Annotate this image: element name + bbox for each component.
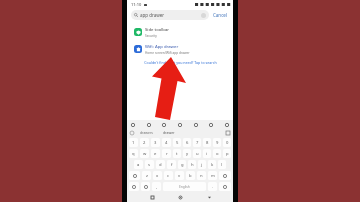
staticText: f <box>171 162 173 168</box>
staticText: c <box>167 173 170 179</box>
button[interactable]: z <box>142 171 151 180</box>
staticText: n <box>200 173 203 179</box>
staticText: i <box>206 151 208 157</box>
button[interactable]: Keyboard tool 3 <box>161 122 167 128</box>
button[interactable]: s <box>145 160 154 169</box>
button[interactable]: r <box>162 149 171 158</box>
staticText: x <box>156 173 159 179</box>
button[interactable]: , <box>152 182 161 191</box>
staticText: v <box>178 173 181 179</box>
button[interactable]: q <box>129 149 138 158</box>
button[interactable]: Emoji <box>141 182 150 191</box>
staticText: h <box>191 162 194 168</box>
button[interactable]: y <box>183 149 191 158</box>
button[interactable]: 6 <box>183 138 191 147</box>
button[interactable]: f <box>167 160 176 169</box>
staticText: u <box>196 151 199 157</box>
staticText: Security <box>145 34 157 38</box>
staticText: Side toolbar <box>145 27 170 33</box>
button[interactable]: Back <box>205 193 213 201</box>
staticText: drawer <box>163 130 175 135</box>
button[interactable]: . <box>208 182 217 191</box>
staticText: o <box>216 151 219 157</box>
staticText: 9 <box>216 140 219 146</box>
button[interactable]: Shift <box>129 171 140 180</box>
button[interactable]: u <box>193 149 201 158</box>
button[interactable]: n <box>197 171 206 180</box>
staticText: z <box>146 173 148 179</box>
button[interactable]: h <box>188 160 196 169</box>
staticText: s <box>148 162 151 168</box>
button[interactable]: Keyboard tool 1 <box>130 122 136 128</box>
button[interactable]: 7 <box>193 138 201 147</box>
button[interactable]: Recents <box>148 193 156 201</box>
staticText: drawers <box>140 130 153 135</box>
button[interactable]: k <box>208 160 216 169</box>
button[interactable]: Cancel <box>212 11 229 19</box>
button[interactable]: 3 <box>151 138 160 147</box>
button[interactable]: Keyboard tool 2 <box>146 122 152 128</box>
staticText: r <box>166 151 168 157</box>
button[interactable]: Backspace <box>219 171 231 180</box>
button[interactable]: d <box>156 160 165 169</box>
button[interactable]: b <box>186 171 195 180</box>
other: Search <box>134 13 138 17</box>
button[interactable]: e <box>151 149 160 158</box>
button[interactable]: Symbols <box>129 182 139 191</box>
button[interactable]: l <box>218 160 226 169</box>
staticText: 4 <box>165 140 168 146</box>
staticText: q <box>132 151 135 157</box>
button[interactable]: Keyboard tool 5 <box>193 122 199 128</box>
button[interactable]: m <box>208 171 217 180</box>
staticText: . <box>212 184 214 190</box>
button[interactable]: t <box>173 149 181 158</box>
button[interactable]: Side toolbar <box>131 25 229 39</box>
button[interactable]: a <box>134 160 143 169</box>
button[interactable]: Clear <box>201 13 206 18</box>
staticText: 11:10 <box>131 2 142 7</box>
staticText: Couldn't find what you need? Tap to sear… <box>144 60 217 65</box>
button[interactable]: i <box>203 149 211 158</box>
button[interactable]: Search <box>219 182 231 191</box>
button[interactable]: Keyboard tool 7 <box>224 122 230 128</box>
button[interactable]: x <box>153 171 162 180</box>
button[interactable]: 2 <box>140 138 149 147</box>
button[interactable]: 1 <box>129 138 138 147</box>
button[interactable]: 9 <box>213 138 221 147</box>
staticText: a <box>137 162 140 168</box>
button[interactable]: g <box>178 160 186 169</box>
button[interactable]: v <box>175 171 184 180</box>
button[interactable]: p <box>223 149 231 158</box>
staticText: Cancel <box>213 12 228 18</box>
staticText: 7 <box>196 140 199 146</box>
button[interactable]: English <box>163 182 206 191</box>
button[interactable]: 5 <box>173 138 181 147</box>
staticText: k <box>211 162 214 168</box>
staticText: t <box>176 151 178 157</box>
staticText: g <box>181 162 184 168</box>
staticText: 1 <box>132 140 135 146</box>
staticText: y <box>186 151 189 157</box>
button[interactable]: c <box>164 171 173 180</box>
staticText: app drawer <box>140 12 165 18</box>
button[interactable]: w <box>140 149 149 158</box>
staticText: d <box>159 162 162 168</box>
button[interactable]: 0 <box>223 138 231 147</box>
staticText: 6 <box>186 140 189 146</box>
button[interactable]: Keyboard tool 6 <box>208 122 214 128</box>
button[interactable]: Wifi: App drawer <box>131 42 229 56</box>
button[interactable]: o <box>213 149 221 158</box>
button[interactable]: Search <box>131 10 209 20</box>
button[interactable]: Home <box>176 193 184 201</box>
staticText: English <box>179 185 190 189</box>
staticText: Home screen/Wifi app drawer <box>145 51 190 55</box>
staticText: 8 <box>206 140 209 146</box>
staticText: Wifi: App drawer <box>145 44 179 50</box>
button[interactable]: 8 <box>203 138 211 147</box>
button[interactable]: j <box>198 160 206 169</box>
button[interactable]: 4 <box>162 138 171 147</box>
button[interactable]: Keyboard tool 4 <box>177 122 183 128</box>
staticText: , <box>156 184 158 190</box>
staticText: e <box>154 151 157 157</box>
staticText: p <box>226 151 229 157</box>
